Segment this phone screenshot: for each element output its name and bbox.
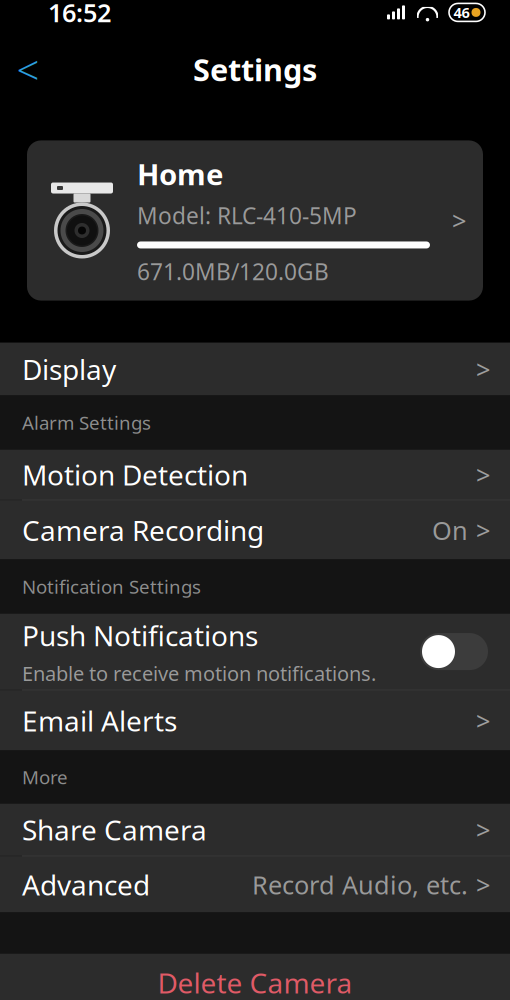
staticText: < (16, 43, 39, 96)
staticText: Email Alerts (22, 702, 177, 739)
button[interactable]: Back (6, 45, 50, 93)
button[interactable]: Delete Camera (0, 954, 510, 1000)
button[interactable]: Camera Recording (0, 501, 510, 560)
staticText: Notification Settings (22, 574, 201, 599)
button[interactable]: Advanced (0, 857, 510, 913)
staticText: Enable to receive motion notifications. (22, 660, 376, 686)
staticText: Alarm Settings (22, 410, 151, 435)
staticText: Record Audio, etc. (252, 868, 468, 901)
staticText: 671.0MB/120.0GB (137, 256, 329, 287)
staticText: Settings (193, 49, 317, 90)
staticText: Share Camera (22, 811, 207, 848)
staticText: Motion Detection (22, 456, 248, 493)
staticText: Advanced (22, 866, 150, 903)
staticText: > (476, 868, 490, 901)
staticText: On (432, 513, 468, 547)
staticText: > (476, 704, 490, 737)
staticText: Model: RLC-410-5MP (137, 200, 357, 230)
button[interactable]: Display (0, 343, 510, 396)
staticText: Home (137, 154, 224, 193)
button[interactable]: Push Notifications (0, 614, 510, 690)
button[interactable]: Home (27, 140, 483, 301)
button[interactable]: Motion Detection (0, 450, 510, 500)
staticText: Delete Camera (157, 964, 352, 1000)
staticText: Display (22, 350, 116, 388)
staticText: Camera Recording (22, 511, 264, 549)
staticText: > (476, 352, 490, 386)
staticText: > (452, 204, 466, 237)
staticText: 46 (453, 3, 469, 22)
button[interactable]: Email Alerts (0, 691, 510, 751)
button[interactable]: Share Camera (0, 804, 510, 856)
staticText: > (476, 458, 490, 491)
staticText: 16:52 (48, 0, 111, 29)
staticText: > (476, 513, 490, 547)
staticText: Push Notifications (22, 617, 258, 654)
staticText: More (22, 765, 68, 789)
staticText: > (476, 813, 490, 846)
